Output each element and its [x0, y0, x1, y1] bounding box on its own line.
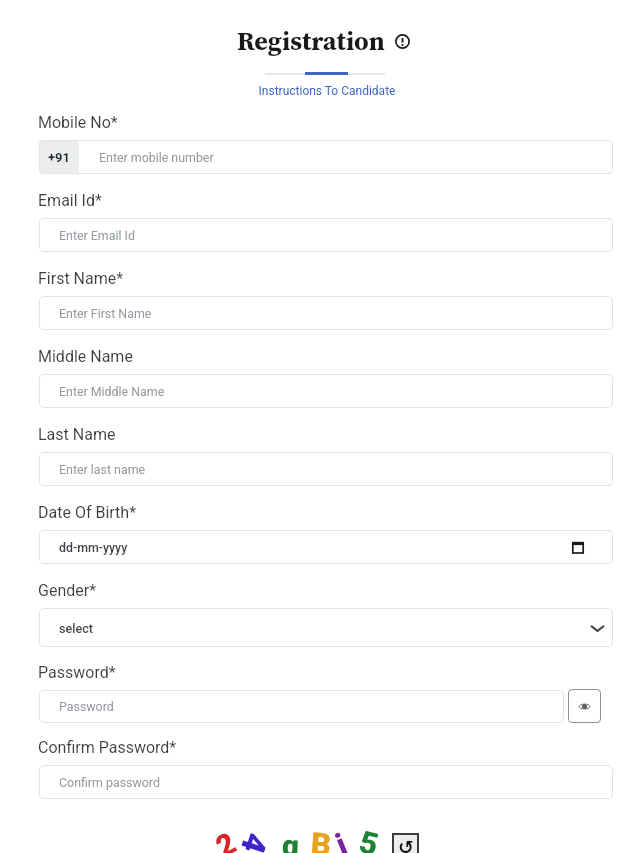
button[interactable]: Select gender — [584, 615, 610, 641]
staticText: First Name* — [38, 269, 124, 288]
staticText: ↺ — [398, 836, 414, 853]
staticText: q — [281, 828, 300, 853]
staticText: Password — [59, 699, 114, 714]
button[interactable]: select — [39, 608, 613, 647]
button[interactable]: Information — [392, 31, 412, 51]
button[interactable]: Instructions To Candidate — [7, 84, 640, 98]
staticText: B — [310, 825, 333, 853]
staticText: 2 — [210, 825, 242, 853]
staticText: Confirm Password* — [38, 738, 177, 757]
staticText: Enter last name — [59, 462, 146, 477]
staticText: select — [59, 621, 93, 636]
staticText: Gender* — [38, 581, 97, 600]
staticText: Enter Middle Name — [59, 384, 165, 399]
staticText: Middle Name — [38, 347, 133, 366]
button[interactable]: Confirm password — [39, 765, 613, 799]
staticText: Confirm password — [59, 775, 160, 790]
button[interactable]: Password — [39, 690, 564, 723]
button[interactable]: Enter last name — [39, 452, 613, 486]
staticText: Last Name — [38, 425, 116, 444]
staticText: Password* — [38, 663, 116, 682]
button[interactable]: Show password — [568, 689, 601, 723]
staticText: Enter First Name — [59, 306, 152, 321]
button[interactable]: +91 — [39, 140, 613, 174]
button[interactable]: Enter Middle Name — [39, 374, 613, 408]
staticText: Date Of Birth* — [38, 503, 137, 522]
staticText: i — [331, 826, 352, 853]
button[interactable]: Refresh captcha — [392, 833, 419, 853]
staticText: 5 — [356, 823, 382, 853]
staticText: Enter mobile number — [99, 150, 214, 165]
staticText: Registration — [237, 23, 385, 59]
staticText: dd-mm-yyyy — [59, 540, 128, 555]
staticText: +91 — [48, 150, 71, 165]
staticText: Mobile No* — [38, 113, 118, 132]
button[interactable]: Enter First Name — [39, 296, 613, 330]
button[interactable]: dd-mm-yyyy — [39, 530, 613, 564]
staticText: Enter Email Id — [59, 228, 135, 243]
button[interactable]: Enter Email Id — [39, 218, 613, 252]
staticText: Email Id* — [38, 191, 102, 210]
button[interactable]: Pick date — [567, 536, 589, 558]
staticText: 4 — [232, 828, 276, 853]
